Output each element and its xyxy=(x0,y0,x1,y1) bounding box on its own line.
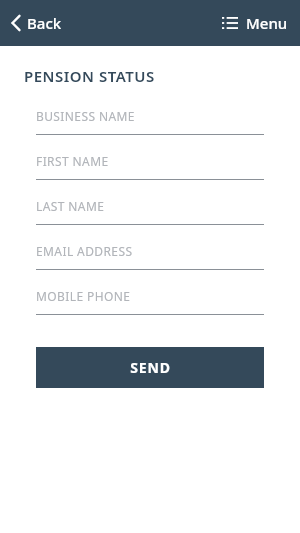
button[interactable]: EMAIL ADDRESS xyxy=(36,243,264,270)
other: Back xyxy=(11,15,21,31)
button[interactable]: SEND xyxy=(36,347,264,388)
staticText: MOBILE PHONE xyxy=(36,288,131,304)
button[interactable]: Menu xyxy=(210,4,300,42)
staticText: Back xyxy=(27,13,62,33)
staticText: BUSINESS NAME xyxy=(36,108,135,124)
staticText: LAST NAME xyxy=(36,198,105,214)
staticText: PENSION STATUS xyxy=(24,66,155,86)
button[interactable]: Back xyxy=(0,4,76,42)
staticText: EMAIL ADDRESS xyxy=(36,243,133,259)
button[interactable]: LAST NAME xyxy=(36,198,264,225)
button[interactable]: FIRST NAME xyxy=(36,153,264,180)
staticText: Menu xyxy=(246,13,288,33)
button[interactable]: BUSINESS NAME xyxy=(36,108,264,135)
other: Menu xyxy=(222,17,238,29)
staticText: FIRST NAME xyxy=(36,153,109,169)
staticText: SEND xyxy=(130,358,171,377)
button[interactable]: MOBILE PHONE xyxy=(36,288,264,315)
